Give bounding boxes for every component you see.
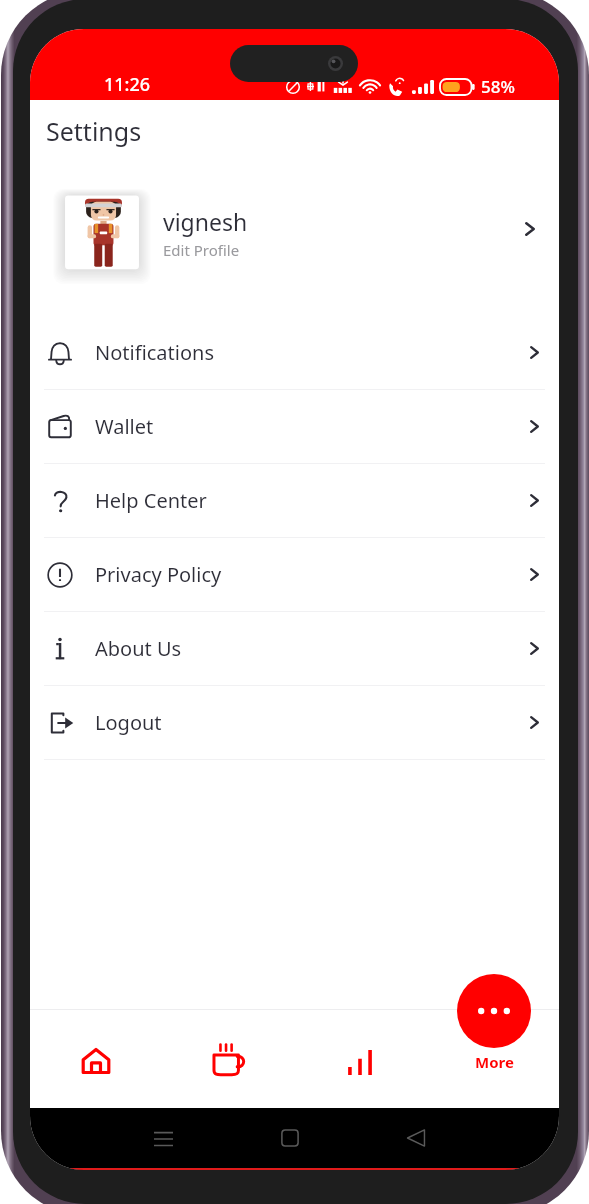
staticText: About Us <box>95 635 182 662</box>
staticText: vignesh <box>163 206 248 237</box>
staticText: Settings <box>46 114 142 148</box>
other: Recents <box>154 1130 173 1148</box>
other: Back <box>407 1129 425 1147</box>
staticText: Help Center <box>95 487 207 514</box>
button[interactable]: vignesh <box>30 173 559 285</box>
other: Home <box>281 1129 299 1147</box>
staticText: Wallet <box>95 413 154 440</box>
button[interactable]: Wallet <box>30 390 559 463</box>
button[interactable]: Logout <box>30 686 559 759</box>
staticText: Edit Profile <box>163 240 240 260</box>
button[interactable]: Privacy Policy <box>30 538 559 611</box>
staticText: Privacy Policy <box>95 561 222 588</box>
button[interactable]: Home <box>30 1009 162 1115</box>
staticText: 11:26 <box>104 72 151 97</box>
staticText: More <box>475 1052 514 1072</box>
staticText: 58% <box>481 75 515 98</box>
button[interactable]: Reports <box>295 1009 427 1115</box>
button[interactable]: Notifications <box>30 316 559 389</box>
button[interactable]: More options <box>457 974 531 1048</box>
button[interactable]: Help Center <box>30 464 559 537</box>
button[interactable]: About Us <box>30 612 559 685</box>
button[interactable]: More <box>427 1009 559 1115</box>
staticText: Logout <box>95 709 162 736</box>
button[interactable]: Orders <box>162 1009 295 1115</box>
staticText: Notifications <box>95 339 214 366</box>
